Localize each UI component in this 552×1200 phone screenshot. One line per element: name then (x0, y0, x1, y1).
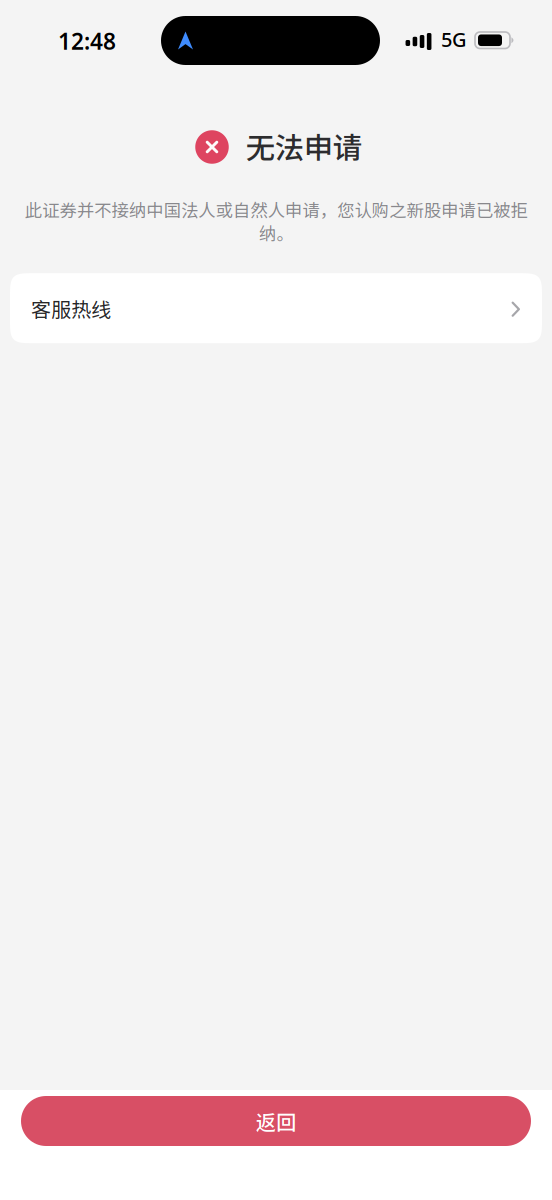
button[interactable]: 客服热线 (10, 273, 542, 343)
staticText: 5G (441, 26, 467, 53)
button[interactable]: 返回 (21, 1096, 531, 1146)
staticText: 12:48 (58, 26, 116, 56)
staticText: 无法申请 (246, 125, 362, 167)
staticText: 此证券并不接纳中国法人或自然人申请，您认购之新股申请已被拒纳。 (25, 197, 527, 245)
staticText: 客服热线 (31, 294, 111, 323)
staticText: 返回 (256, 1106, 296, 1135)
